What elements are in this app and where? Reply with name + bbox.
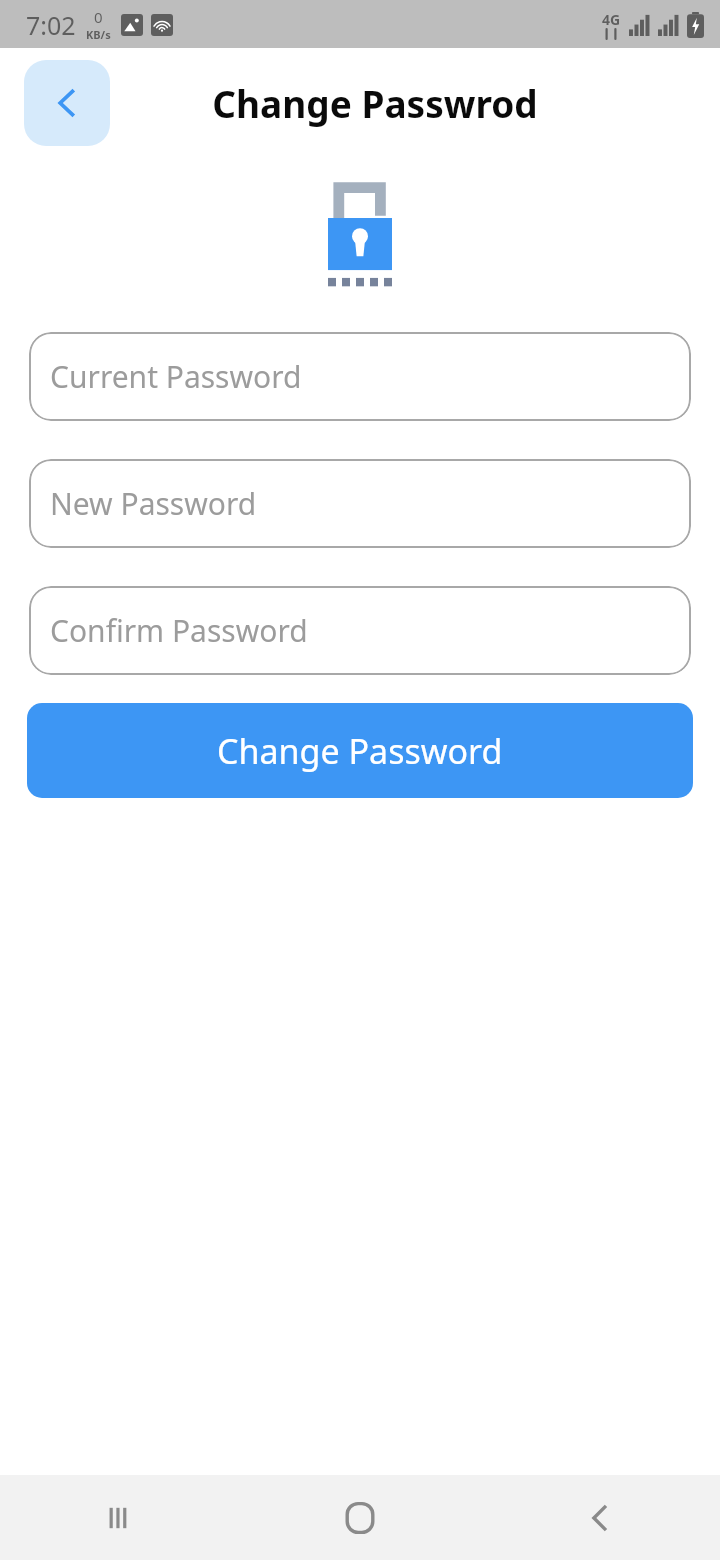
staticText: Change Password bbox=[217, 728, 503, 774]
button[interactable]: Current Password bbox=[29, 332, 691, 421]
button[interactable]: Recent apps bbox=[0, 1475, 240, 1560]
button[interactable]: Back bbox=[24, 60, 110, 146]
staticText: 0 bbox=[94, 7, 103, 27]
staticText: Current Password bbox=[50, 356, 302, 397]
button[interactable]: Confirm Password bbox=[29, 586, 691, 675]
staticText: Confirm Password bbox=[50, 610, 308, 651]
button[interactable]: Back bbox=[480, 1475, 720, 1560]
staticText: 7:02 bbox=[26, 8, 76, 42]
staticText: Change Passwrod bbox=[212, 78, 538, 128]
staticText: 4G bbox=[602, 10, 621, 29]
button[interactable]: Change Password bbox=[27, 703, 693, 798]
staticText: KB/s bbox=[86, 27, 111, 42]
button[interactable]: Home bbox=[240, 1475, 480, 1560]
button[interactable]: New Password bbox=[29, 459, 691, 548]
staticText: New Password bbox=[50, 483, 257, 524]
